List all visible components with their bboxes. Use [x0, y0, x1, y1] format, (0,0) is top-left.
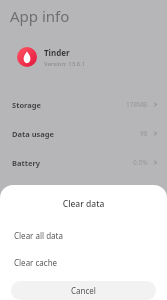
staticText: Tinder	[44, 47, 70, 58]
other: Tinder app icon	[17, 47, 37, 67]
button[interactable]: Tinder app icon	[0, 41, 167, 73]
staticText: Battery	[12, 158, 41, 168]
button[interactable]: Storage	[0, 90, 167, 119]
staticText: 98	[140, 129, 148, 138]
staticText: App info	[10, 6, 70, 26]
staticText: Cancel	[71, 285, 96, 296]
staticText: Clear all data	[14, 230, 63, 241]
button[interactable]: Data usage	[0, 119, 167, 148]
button[interactable]: Clear cache	[0, 249, 167, 276]
staticText: Storage	[12, 100, 41, 110]
button[interactable]: Clear all data	[0, 222, 167, 249]
staticText: Clear cache	[14, 257, 58, 268]
staticText: Clear data	[0, 198, 167, 210]
staticText: 178MB	[126, 100, 148, 109]
button[interactable]: Cancel	[11, 281, 156, 300]
staticText: Data usage	[12, 129, 55, 139]
staticText: 0.0%	[133, 158, 148, 167]
button[interactable]: Battery	[0, 148, 167, 177]
staticText: Version: 13.6.1	[44, 60, 86, 68]
